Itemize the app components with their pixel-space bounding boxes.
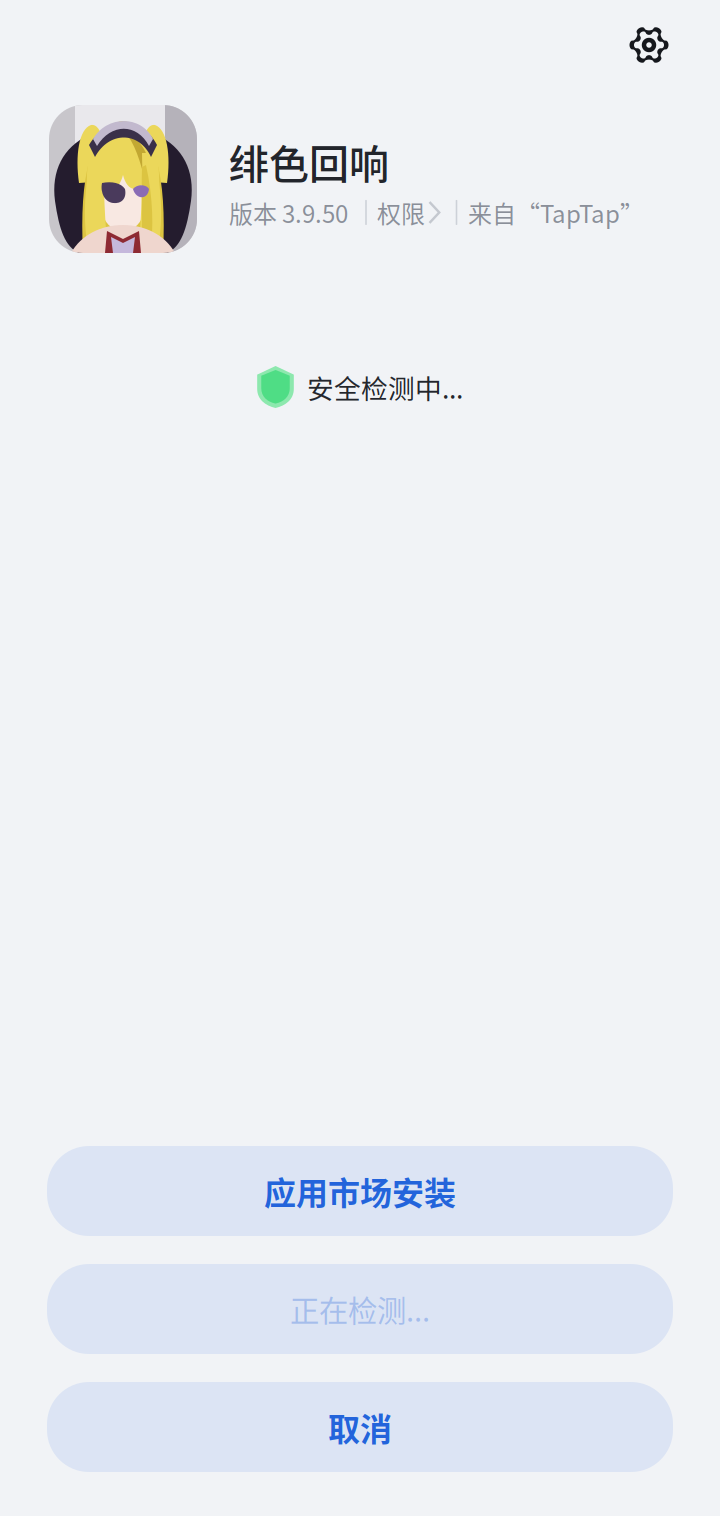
staticText: 应用市场安装 bbox=[264, 1168, 456, 1214]
staticText: 版本 3.9.50 bbox=[229, 195, 348, 230]
button[interactable]: Settings bbox=[614, 10, 684, 80]
staticText: 绯色回响 bbox=[229, 132, 389, 190]
staticText: 正在检测... bbox=[290, 1288, 430, 1330]
button[interactable]: 权限 bbox=[377, 195, 445, 230]
staticText: 取消 bbox=[328, 1404, 392, 1450]
button[interactable]: 取消 bbox=[47, 1382, 673, 1472]
button[interactable]: 正在检测... bbox=[47, 1264, 673, 1354]
staticText: 权限 bbox=[377, 195, 425, 230]
staticText: 来自“TapTap” bbox=[468, 195, 644, 230]
button[interactable]: 应用市场安装 bbox=[47, 1146, 673, 1236]
staticText: 安全检测中... bbox=[307, 368, 463, 406]
